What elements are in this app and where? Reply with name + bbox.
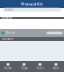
staticText: Online bbox=[5, 31, 15, 35]
staticText: Home bbox=[4, 66, 12, 70]
staticText: Chats bbox=[20, 66, 27, 70]
staticText: More bbox=[52, 66, 59, 70]
staticText: Tools bbox=[36, 66, 43, 70]
staticText: Updated bbox=[1, 37, 13, 41]
button[interactable]: Home bbox=[0, 61, 16, 72]
staticText: Recent bbox=[2, 16, 12, 20]
staticText: Protocol Kit bbox=[21, 1, 43, 7]
button[interactable]: More bbox=[48, 61, 64, 72]
staticText: Search bbox=[5, 8, 13, 11]
button[interactable]: Chats bbox=[16, 61, 32, 72]
button[interactable]: Tools bbox=[32, 61, 48, 72]
